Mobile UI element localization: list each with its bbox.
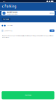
button[interactable]: Pay now bbox=[2, 91, 54, 99]
staticText: Please check your vehicle details and th… bbox=[2, 35, 54, 38]
staticText: Pay now bbox=[25, 94, 31, 96]
staticText: ParkMe bbox=[3, 18, 9, 20]
staticText: Faster parking bbox=[7, 13, 18, 15]
staticText: Edit bbox=[50, 30, 53, 32]
staticText: Open in the app bbox=[7, 11, 18, 13]
button[interactable]: ParkMe bbox=[2, 18, 10, 20]
staticText: 9:41 bbox=[3, 0, 6, 2]
staticText: OPEN bbox=[49, 12, 53, 14]
button[interactable]: Back bbox=[2, 5, 4, 8]
button[interactable]: Edit bbox=[50, 29, 54, 32]
staticText: Location bbox=[7, 25, 13, 26]
staticText: Parking bbox=[5, 5, 17, 8]
button[interactable]: P bbox=[1, 11, 55, 15]
staticText: Zone 4182 bbox=[4, 30, 12, 32]
